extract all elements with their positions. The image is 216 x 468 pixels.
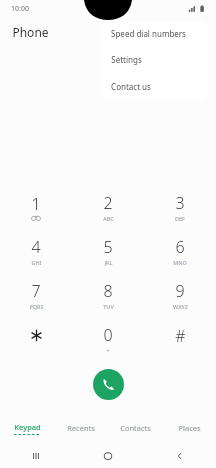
button[interactable]: 5 xyxy=(72,229,144,273)
button[interactable]: 8 xyxy=(72,273,144,317)
button[interactable]: 3 xyxy=(144,185,216,229)
button[interactable]: Settings xyxy=(100,46,208,73)
staticText: JKL xyxy=(104,259,113,266)
button[interactable]: 6 xyxy=(144,229,216,273)
staticText: 6 xyxy=(175,236,185,258)
button[interactable]: Recent apps xyxy=(0,443,72,468)
staticText: 8 xyxy=(103,280,113,302)
staticText: # xyxy=(175,325,186,347)
button[interactable]: Recents xyxy=(54,418,108,438)
staticText: 0 xyxy=(103,324,113,346)
staticText: Speed dial numbers xyxy=(111,28,186,39)
staticText: Places xyxy=(178,423,201,433)
staticText: 1 xyxy=(31,193,41,215)
staticText: Contacts xyxy=(120,423,151,433)
button[interactable]: Places xyxy=(162,418,216,438)
button[interactable]: Home xyxy=(72,443,144,468)
staticText: DEF xyxy=(175,215,185,222)
button[interactable]: Contact us xyxy=(100,73,208,100)
staticText: 9 xyxy=(175,280,185,302)
button[interactable]: Speed dial numbers xyxy=(100,21,208,46)
staticText: TUV xyxy=(103,303,114,310)
staticText: Settings xyxy=(111,54,142,65)
staticText: MNO xyxy=(173,259,187,266)
button[interactable]: Back xyxy=(144,443,216,468)
button[interactable]: 0 xyxy=(72,317,144,361)
staticText: 4 xyxy=(31,236,41,258)
button[interactable]: 4 xyxy=(0,229,72,273)
button[interactable] xyxy=(0,317,72,361)
button[interactable]: 1 xyxy=(0,185,72,229)
staticText: 7 xyxy=(31,280,41,302)
staticText: PQRS xyxy=(29,303,44,310)
staticText: Phone xyxy=(12,24,49,40)
staticText: ABC xyxy=(103,215,114,222)
button[interactable]: Keypad xyxy=(0,418,54,438)
staticText: Recents xyxy=(67,423,95,433)
staticText: + xyxy=(106,347,110,355)
staticText: WXYZ xyxy=(173,303,188,310)
staticText: 10:00 xyxy=(11,4,29,14)
button[interactable]: # xyxy=(144,317,216,361)
button[interactable]: 2 xyxy=(72,185,144,229)
button[interactable]: Call xyxy=(93,369,124,400)
staticText: 3 xyxy=(175,192,185,214)
button[interactable]: Contacts xyxy=(108,418,162,438)
staticText: 2 xyxy=(103,192,113,214)
staticText: Contact us xyxy=(111,81,151,92)
staticText: GHI xyxy=(31,259,42,266)
staticText: Keypad xyxy=(14,422,41,432)
staticText: 5 xyxy=(103,236,113,258)
button[interactable]: 7 xyxy=(0,273,72,317)
button[interactable]: 9 xyxy=(144,273,216,317)
